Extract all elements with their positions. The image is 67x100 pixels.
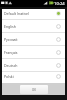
staticText: Русский bbox=[4, 37, 18, 42]
staticText: English bbox=[4, 24, 16, 29]
button[interactable]: Polski bbox=[2, 72, 65, 81]
button[interactable]: Русский bbox=[2, 33, 65, 45]
staticText: Default (native) bbox=[4, 11, 30, 16]
button[interactable]: English bbox=[2, 20, 65, 32]
staticText: OK bbox=[32, 88, 36, 92]
staticText: Polski bbox=[4, 74, 14, 79]
staticText: Français bbox=[4, 50, 18, 55]
button[interactable]: Default (native) bbox=[2, 9, 65, 19]
button[interactable]: Français bbox=[2, 46, 65, 58]
staticText: Deutsch bbox=[4, 63, 18, 68]
staticText: 10:24 bbox=[54, 1, 65, 7]
button[interactable]: Deutsch bbox=[2, 59, 65, 71]
button[interactable]: OK bbox=[20, 85, 48, 94]
